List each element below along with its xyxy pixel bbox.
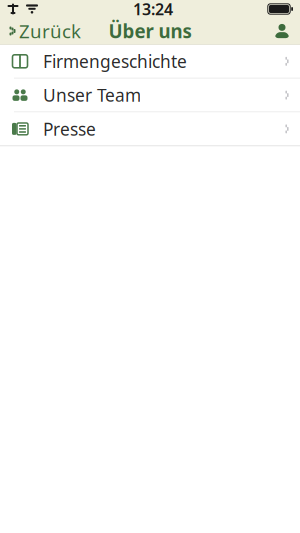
staticText: 13:24 <box>133 0 173 20</box>
button[interactable]: Firmengeschichte <box>0 45 300 78</box>
staticText: Firmengeschichte <box>43 50 187 73</box>
staticText: Zurück <box>19 19 81 43</box>
button[interactable]: Presse <box>0 112 300 145</box>
button[interactable]: Account <box>267 19 297 42</box>
button[interactable]: Unser Team <box>0 79 300 112</box>
staticText: Unser Team <box>43 84 141 107</box>
staticText: Presse <box>43 117 96 140</box>
staticText: Über uns <box>108 19 191 43</box>
button[interactable]: Zurück <box>3 15 87 47</box>
